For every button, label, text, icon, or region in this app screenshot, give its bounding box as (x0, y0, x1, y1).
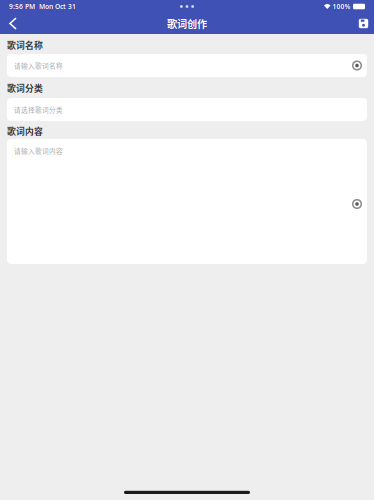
button[interactable]: 请输入歌词名称 (0, 54, 374, 77)
staticText: 歌词内容 (7, 125, 43, 137)
button[interactable]: Clear text (352, 60, 362, 70)
staticText: 请选择歌词分类 (14, 105, 63, 114)
staticText: 歌词创作 (167, 16, 207, 31)
staticText: 歌词分类 (7, 82, 43, 94)
button[interactable]: Save (356, 13, 371, 34)
staticText: 请输入歌词名称 (14, 61, 63, 70)
staticText: 100% (332, 2, 350, 11)
button[interactable]: 请选择歌词分类 (0, 98, 374, 121)
button[interactable]: Clear text (352, 199, 362, 209)
staticText: Mon Oct 31 (39, 2, 76, 11)
button[interactable]: 请输入歌词内容 (0, 139, 374, 264)
button[interactable]: Back (4, 13, 22, 34)
staticText: 请输入歌词内容 (14, 146, 63, 156)
staticText: 歌词名称 (7, 39, 43, 51)
staticText: 9:56 PM (9, 2, 35, 11)
